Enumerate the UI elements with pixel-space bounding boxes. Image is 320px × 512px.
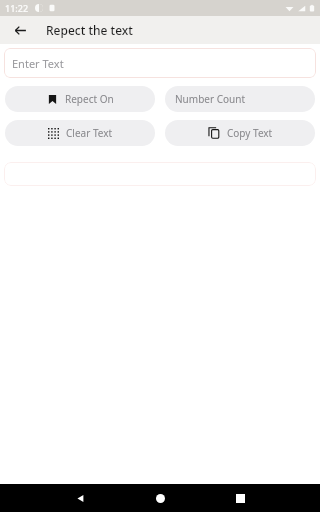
button[interactable]: Repect On (5, 86, 155, 112)
button[interactable]: Clear Text (5, 120, 155, 146)
button[interactable]: Home (138, 484, 182, 512)
staticText: Repect the text (46, 22, 133, 38)
button[interactable]: Number Count (165, 86, 315, 112)
button[interactable]: Back (8, 18, 32, 42)
button[interactable]: Enter Text (4, 48, 316, 78)
staticText: 11:22 (5, 2, 29, 14)
staticText: Copy Text (227, 126, 273, 140)
staticText: Clear Text (66, 126, 113, 140)
staticText: Repect On (65, 92, 114, 106)
button[interactable]: Recent apps (218, 484, 262, 512)
staticText: Number Count (175, 92, 245, 106)
staticText: Enter Text (12, 56, 64, 71)
button[interactable]: Copy Text (165, 120, 315, 146)
button[interactable] (4, 162, 316, 186)
button[interactable]: Back (58, 484, 102, 512)
